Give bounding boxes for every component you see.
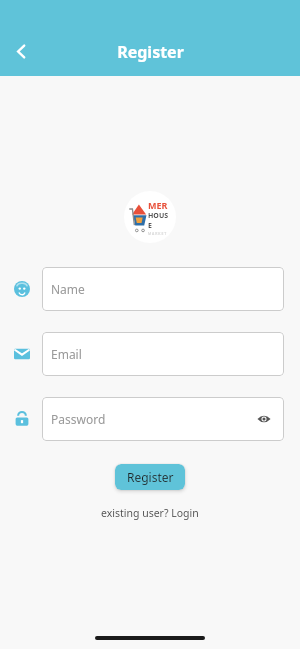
staticText: Register	[127, 469, 174, 485]
staticText: Name	[51, 281, 275, 297]
staticText: MER	[148, 199, 168, 211]
button[interactable]: Name	[42, 267, 284, 311]
button[interactable]: Show password	[253, 408, 275, 430]
button[interactable]: Email	[42, 332, 284, 376]
staticText: Password	[51, 411, 253, 427]
button[interactable]: Back	[4, 34, 38, 68]
staticText: Email	[51, 346, 275, 362]
button[interactable]: Email	[10, 342, 34, 366]
staticText: existing user? Login	[101, 506, 199, 520]
button[interactable]: Name	[10, 277, 34, 301]
button[interactable]: Password	[42, 397, 284, 441]
button[interactable]: Password	[10, 407, 34, 431]
staticText: M A R K E T	[148, 231, 167, 236]
staticText: HOUSE	[148, 211, 171, 231]
button[interactable]: Register	[115, 464, 185, 490]
staticText: Register	[117, 41, 184, 63]
button[interactable]: existing user? Login	[101, 506, 199, 520]
